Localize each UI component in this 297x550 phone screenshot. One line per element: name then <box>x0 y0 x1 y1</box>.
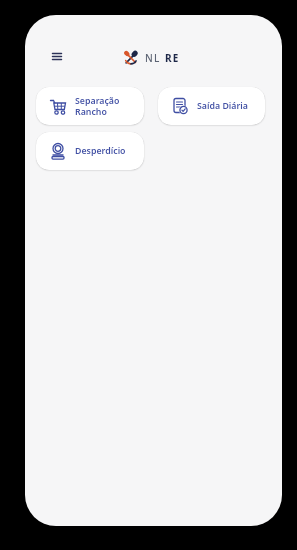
button[interactable]: Separação Rancho <box>36 87 144 125</box>
staticText: Saída Diária <box>197 100 248 112</box>
button[interactable] <box>45 45 69 69</box>
button[interactable]: Desperdício <box>36 132 144 170</box>
staticText: NL <box>145 51 161 65</box>
staticText: Separação Rancho <box>75 95 120 118</box>
staticText: RE <box>165 51 180 65</box>
staticText: Desperdício <box>75 145 126 157</box>
button[interactable]: Saída Diária <box>158 87 265 125</box>
